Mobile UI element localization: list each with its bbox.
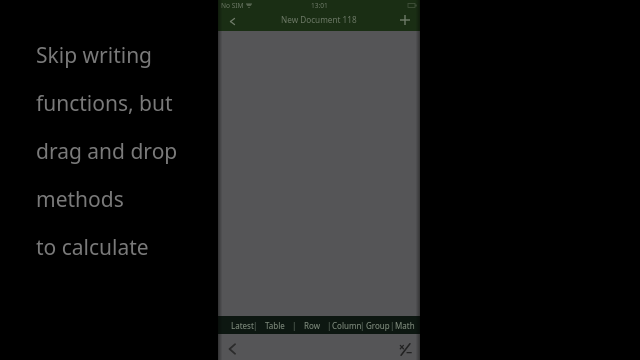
button[interactable]: Formula (396, 340, 414, 358)
button[interactable]: Row (296, 316, 328, 334)
button[interactable]: Add (398, 13, 412, 27)
staticText: New Document 118 (281, 14, 357, 25)
staticText: | (327, 320, 332, 331)
staticText: | (253, 320, 258, 331)
staticText: functions, but (36, 89, 173, 118)
staticText: Column (332, 320, 362, 331)
button[interactable]: Latest (226, 316, 258, 334)
staticText: | (390, 320, 395, 331)
staticText: Math (395, 320, 415, 331)
button[interactable]: Back (223, 340, 241, 358)
staticText: | (360, 320, 365, 331)
button[interactable]: Group (362, 316, 394, 334)
button[interactable]: Back (225, 14, 239, 28)
staticText: | (292, 320, 297, 331)
button[interactable]: Column (331, 316, 363, 334)
staticText: Group (366, 320, 390, 331)
staticText: Latest (231, 320, 254, 331)
button[interactable]: Table (259, 316, 291, 334)
button[interactable]: Math (389, 316, 421, 334)
staticText: No SIM (221, 1, 244, 10)
staticText: Skip writing (36, 41, 153, 70)
staticText: Row (304, 320, 320, 331)
staticText: methods (36, 185, 124, 214)
staticText: drag and drop (36, 137, 178, 166)
staticText: Table (265, 320, 285, 331)
staticText: 13:01 (311, 1, 328, 10)
staticText: to calculate (36, 233, 149, 262)
